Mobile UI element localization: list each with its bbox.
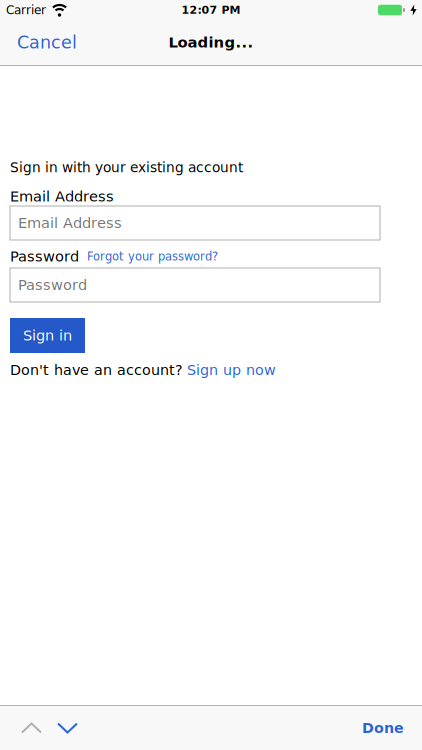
staticText: Email Address — [10, 188, 114, 205]
staticText: Don't have an account? — [10, 362, 183, 378]
staticText: 12:07 PM — [181, 4, 240, 16]
button[interactable]: Sign up now — [187, 362, 276, 378]
button[interactable]: Sign in — [10, 318, 85, 353]
staticText: Password — [18, 276, 87, 293]
staticText: Cancel — [17, 32, 77, 53]
staticText: Carrier — [6, 3, 46, 17]
staticText: Loading... — [168, 34, 253, 51]
staticText: Forgot your password? — [87, 250, 218, 263]
button[interactable]: Forgot your password? — [87, 250, 218, 263]
staticText: Done — [362, 720, 404, 736]
button[interactable]: Done — [362, 720, 422, 736]
staticText: Sign in — [23, 327, 72, 344]
button[interactable]: Password — [10, 268, 380, 302]
button[interactable]: Email Address — [10, 206, 380, 240]
staticText: Sign up now — [187, 362, 276, 378]
staticText: Password — [10, 248, 79, 265]
button[interactable] — [41, 723, 77, 732]
staticText: Sign in with your existing account — [10, 159, 243, 175]
button[interactable] — [0, 723, 41, 732]
staticText: Email Address — [18, 214, 122, 231]
button[interactable]: Cancel — [0, 32, 77, 53]
